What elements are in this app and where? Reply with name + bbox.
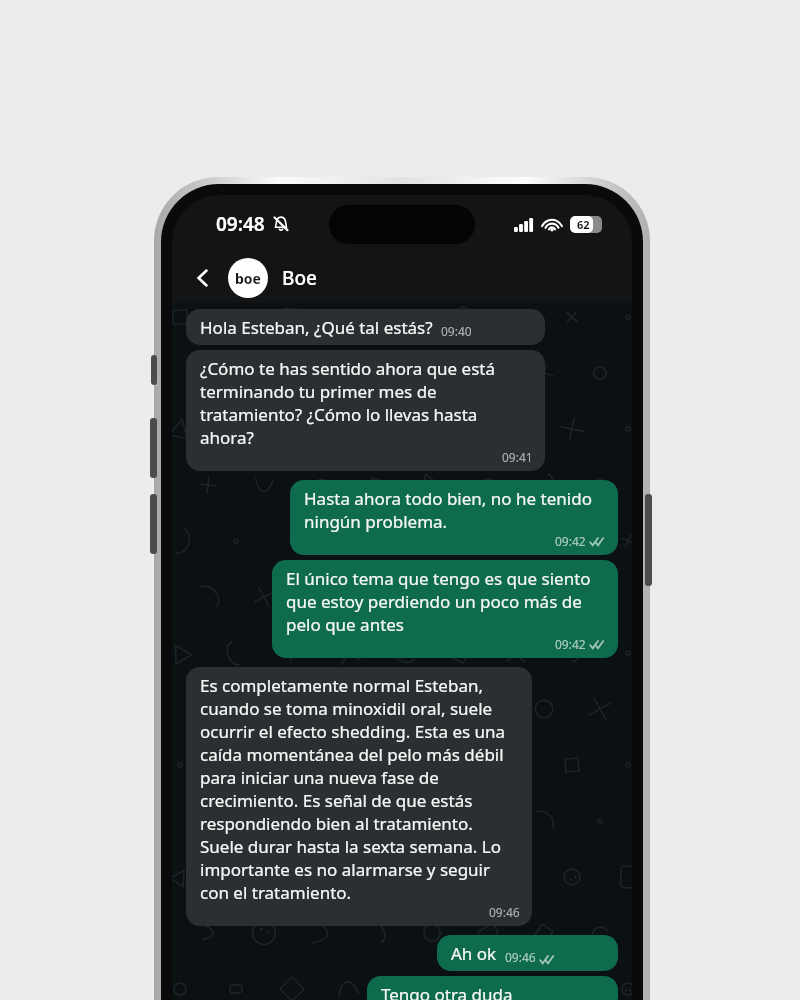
staticText: boe <box>235 269 261 288</box>
staticText: 09:40 <box>441 323 472 339</box>
staticText: 09:48 <box>216 211 265 237</box>
staticText: 09:42 <box>555 533 586 549</box>
button[interactable]: Tengo otra duda más <box>367 976 618 1000</box>
staticText: Boe <box>282 265 317 291</box>
staticText: 09:42 <box>555 636 586 652</box>
staticText: 09:46 <box>489 904 520 920</box>
staticText: 09:46 <box>505 949 536 965</box>
button[interactable]: Back <box>184 259 222 297</box>
staticText: Hasta ahora todo bien, no he tenido ning… <box>304 487 606 533</box>
staticText: 09:41 <box>502 449 533 465</box>
staticText: El único tema que tengo es que siento qu… <box>286 567 606 636</box>
staticText: ¿Cómo te has sentido ahora que está term… <box>200 357 533 449</box>
button[interactable]: Hola Esteban, ¿Qué tal estás? <box>186 309 545 345</box>
button[interactable]: ¿Cómo te has sentido ahora que está term… <box>186 350 545 471</box>
button[interactable]: Es completamente normal Esteban, cuando … <box>186 667 532 926</box>
button[interactable]: El único tema que tengo es que siento qu… <box>272 560 618 658</box>
button[interactable]: Ah ok <box>437 935 618 971</box>
button[interactable]: Hasta ahora todo bien, no he tenido ning… <box>290 480 618 555</box>
button[interactable]: boe <box>228 258 317 298</box>
staticText: Hola Esteban, ¿Qué tal estás? <box>200 316 433 339</box>
staticText: Tengo otra duda más <box>381 983 547 1000</box>
staticText: Es completamente normal Esteban, cuando … <box>200 674 520 904</box>
staticText: Ah ok <box>451 942 497 965</box>
staticText: 62 <box>577 217 590 232</box>
